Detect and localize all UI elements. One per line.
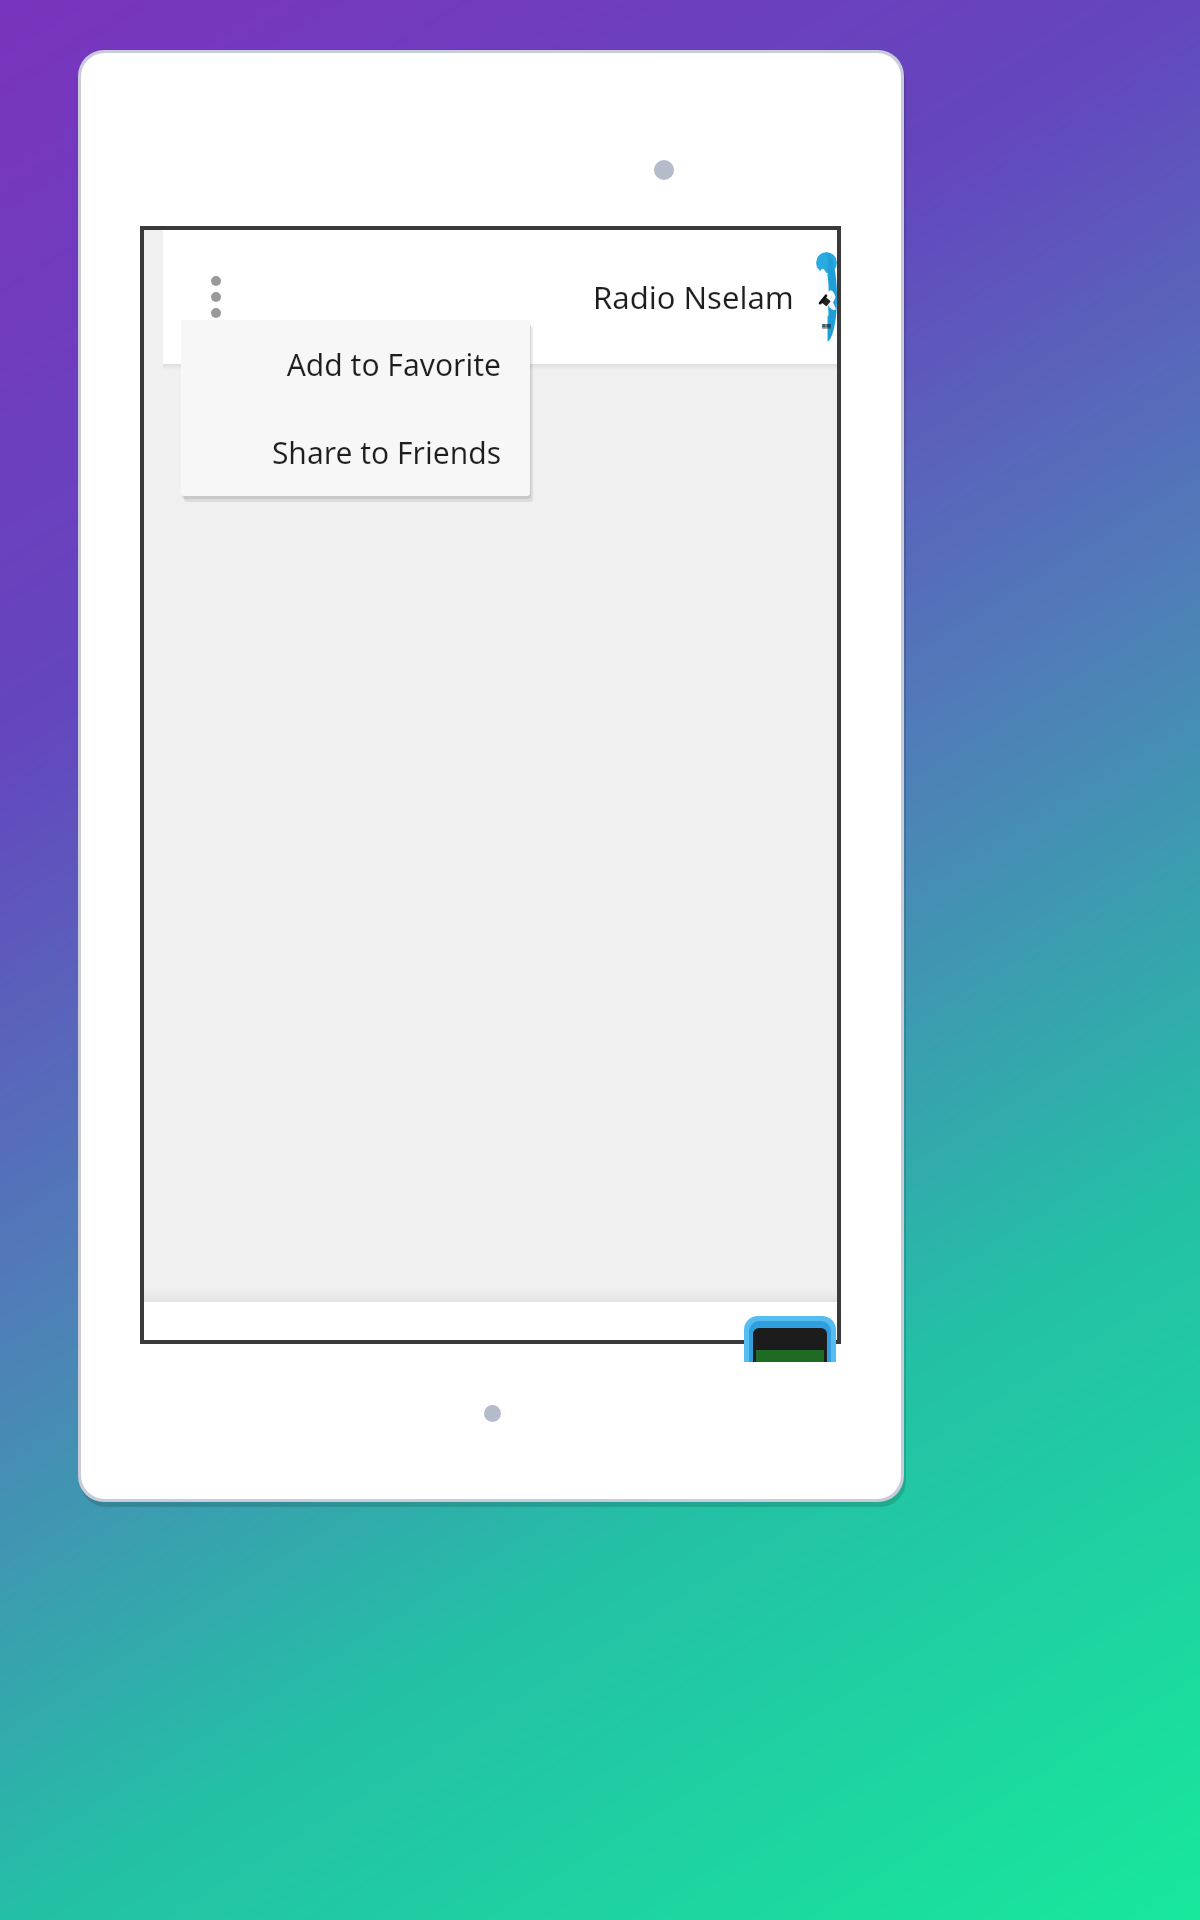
button[interactable]: Share to Friends (181, 408, 530, 496)
button[interactable]: Add to Favorite (181, 320, 530, 408)
button[interactable]: More options (188, 266, 244, 328)
staticText: Add to Favorite (286, 344, 501, 385)
button[interactable]: Radio Nselam logo (816, 252, 837, 342)
button[interactable]: Play (744, 1316, 836, 1362)
staticText: Radio Nselam (593, 276, 794, 318)
staticText: Share to Friends (271, 432, 501, 473)
